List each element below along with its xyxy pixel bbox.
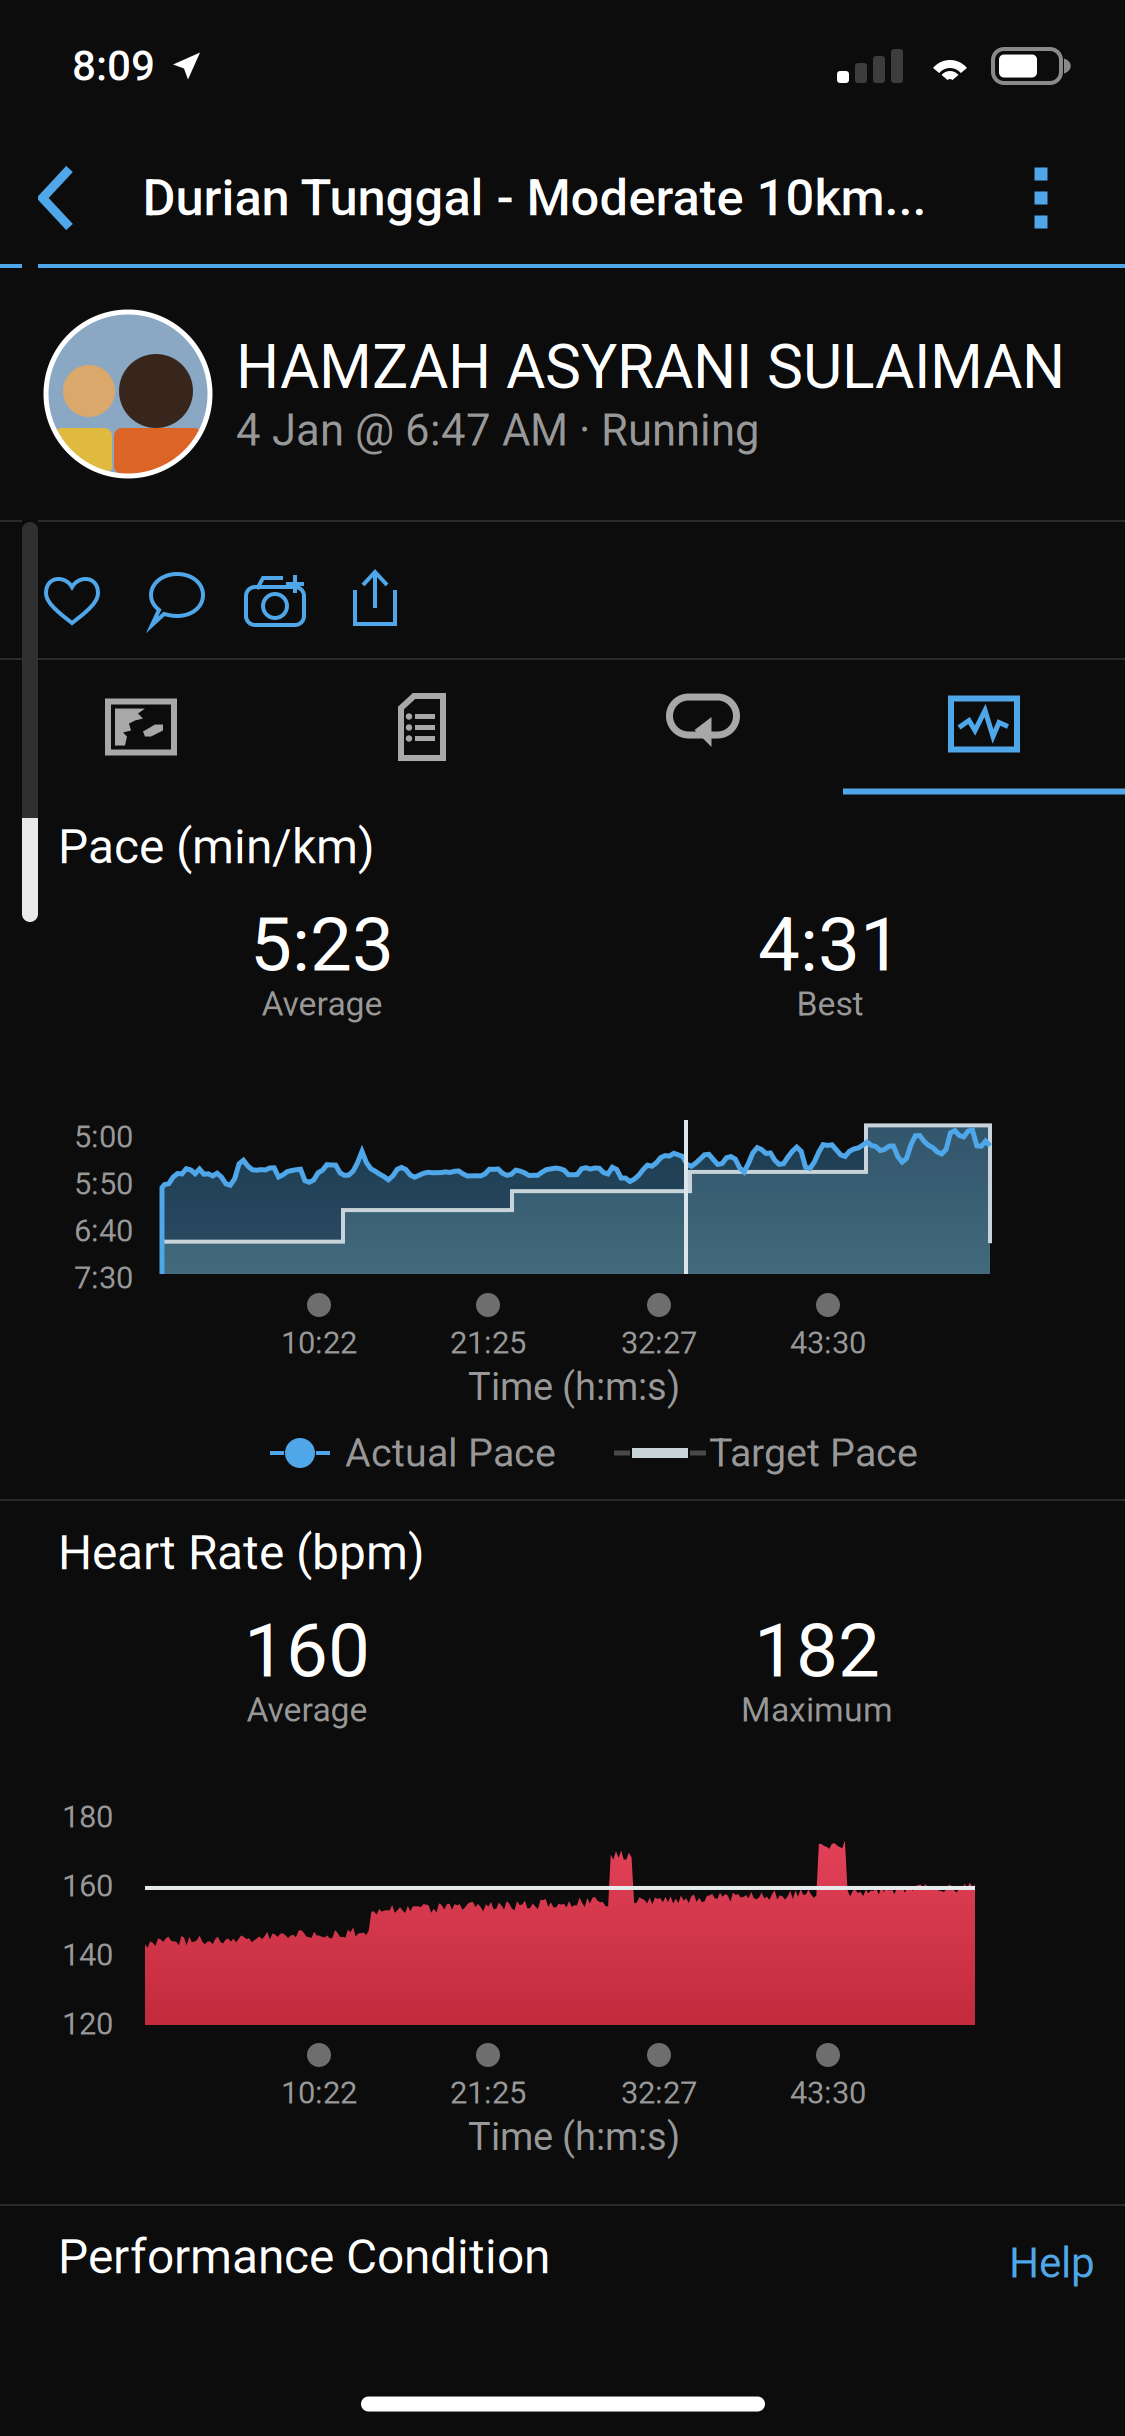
staticText: Average — [246, 1690, 367, 1730]
button[interactable]: Help — [905, 2220, 1095, 2306]
staticText: 32:27 — [621, 1325, 697, 1361]
staticText: Maximum — [741, 1690, 893, 1730]
staticText: 5:23 — [250, 901, 394, 989]
staticText: 43:30 — [790, 1325, 866, 1361]
button[interactable]: More options — [957, 132, 1125, 264]
button[interactable]: Like — [21, 531, 123, 667]
button[interactable]: Comment — [126, 531, 228, 667]
staticText: Pace (min/km) — [58, 819, 375, 875]
staticText: 32:27 — [621, 2075, 697, 2111]
staticText: Average — [261, 984, 382, 1024]
button[interactable]: Add photo — [224, 531, 326, 667]
staticText: 6:40 — [74, 1213, 133, 1249]
staticText: 160 — [244, 1607, 370, 1695]
button[interactable]: Laps — [562, 658, 843, 787]
staticText: 120 — [62, 2006, 113, 2042]
staticText: 4:31 — [758, 901, 902, 989]
staticText: 5:00 — [74, 1119, 133, 1155]
staticText: 43:30 — [790, 2075, 866, 2111]
staticText: Performance Condition — [58, 2229, 550, 2285]
button[interactable]: Share — [324, 531, 426, 667]
staticText: 21:25 — [450, 2075, 526, 2111]
staticText: Target Pace — [709, 1430, 918, 1476]
button[interactable]: Charts — [843, 659, 1125, 794]
staticText: 21:25 — [450, 1325, 526, 1361]
staticText: 4 Jan @ 6:47 AM · Running — [236, 405, 760, 456]
staticText: 182 — [754, 1607, 880, 1695]
staticText: Actual Pace — [345, 1430, 556, 1476]
staticText: 8:09 — [72, 41, 155, 91]
staticText: Time (h:m:s) — [468, 2115, 680, 2159]
staticText: 160 — [62, 1868, 113, 1904]
button[interactable]: Map — [0, 662, 281, 791]
staticText: HAMZAH ASYRANI SULAIMAN — [236, 332, 1065, 403]
staticText: 10:22 — [281, 1325, 357, 1361]
staticText: 180 — [62, 1799, 113, 1835]
staticText: 7:30 — [74, 1260, 133, 1296]
staticText: Durian Tunggal - Moderate 10km... — [142, 168, 926, 228]
staticText: 140 — [62, 1937, 113, 1973]
staticText: 5:50 — [74, 1166, 133, 1202]
button[interactable]: Back — [0, 132, 112, 264]
staticText: 10:22 — [281, 2075, 357, 2111]
staticText: Help — [1009, 2238, 1095, 2288]
staticText: Best — [796, 984, 863, 1024]
button[interactable]: Details — [281, 662, 562, 791]
staticText: Time (h:m:s) — [468, 1365, 680, 1409]
staticText: Heart Rate (bpm) — [58, 1525, 425, 1581]
